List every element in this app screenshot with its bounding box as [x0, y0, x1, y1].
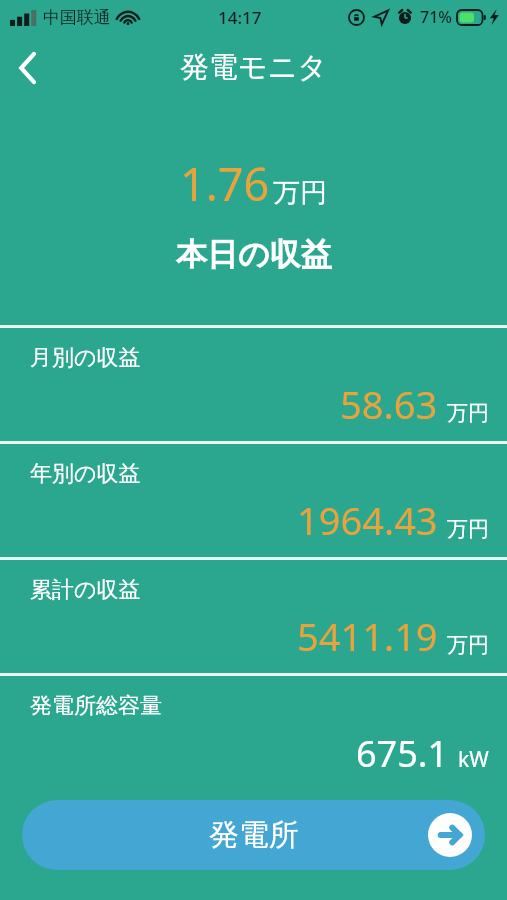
- staticText: 1.76: [180, 153, 270, 214]
- staticText: 中国联通: [43, 7, 111, 28]
- staticText: 万円: [447, 516, 489, 542]
- staticText: 万円: [447, 632, 489, 658]
- staticText: 万円: [273, 176, 327, 210]
- staticText: kW: [458, 745, 489, 774]
- staticText: 発電モニタ: [180, 49, 328, 86]
- button[interactable]: 発電所総容量: [0, 676, 507, 789]
- staticText: 万円: [447, 400, 489, 426]
- button[interactable]: 1.76: [0, 101, 507, 325]
- button[interactable]: 累計の収益: [0, 560, 507, 673]
- staticText: 発電所: [209, 816, 299, 854]
- staticText: 71%: [420, 6, 452, 28]
- button[interactable]: 発電所: [22, 800, 485, 870]
- staticText: 月別の収益: [30, 344, 141, 372]
- staticText: 累計の収益: [30, 576, 141, 604]
- staticText: 675.1: [356, 729, 449, 778]
- button[interactable]: 年別の収益: [0, 444, 507, 557]
- staticText: 58.63: [340, 378, 438, 430]
- staticText: 本日の収益: [176, 235, 332, 274]
- staticText: 年別の収益: [30, 460, 141, 488]
- staticText: 発電所総容量: [30, 692, 162, 720]
- button[interactable]: 月別の収益: [0, 328, 507, 441]
- staticText: 14:17: [218, 6, 262, 29]
- staticText: 1964.43: [297, 494, 438, 546]
- button[interactable]: Back: [0, 40, 56, 96]
- staticText: 5411.19: [297, 610, 438, 662]
